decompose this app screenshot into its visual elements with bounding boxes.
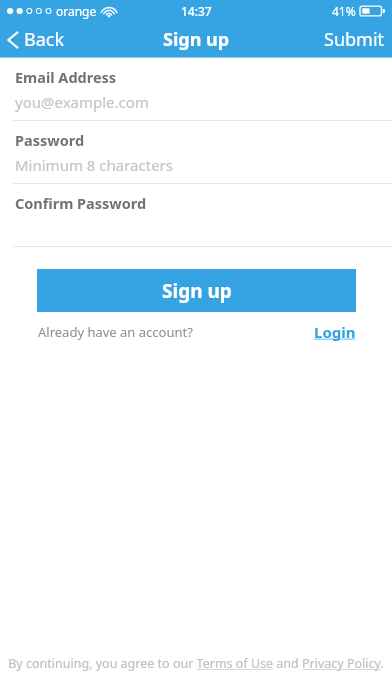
staticText: 41%: [332, 3, 356, 19]
staticText: Already have an account?: [38, 323, 193, 341]
staticText: Email Address: [15, 67, 117, 87]
other: Back: [7, 31, 19, 49]
button[interactable]: By continuing, you agree to our Terms of…: [8, 655, 384, 672]
staticText: Login: [314, 322, 356, 342]
button[interactable]: Back: [0, 23, 75, 56]
button[interactable]: Already have an account?: [38, 323, 193, 341]
staticText: orange: [56, 3, 97, 19]
button[interactable]: Password: [0, 121, 392, 183]
staticText: you@example.com: [15, 92, 149, 112]
button[interactable]: Confirm Password: [0, 184, 392, 246]
staticText: Submit: [324, 27, 385, 52]
button[interactable]: Email Address: [0, 58, 392, 120]
staticText: Confirm Password: [15, 193, 147, 213]
staticText: Password: [15, 130, 85, 150]
button[interactable]: Sign up: [37, 269, 356, 312]
staticText: Sign up: [162, 278, 232, 304]
button[interactable]: Submit: [314, 23, 392, 56]
button[interactable]: Login: [314, 322, 356, 342]
staticText: Minimum 8 characters: [15, 155, 173, 175]
staticText: Back: [24, 27, 65, 52]
staticText: 14:37: [181, 3, 212, 19]
staticText: Sign up: [163, 27, 230, 52]
